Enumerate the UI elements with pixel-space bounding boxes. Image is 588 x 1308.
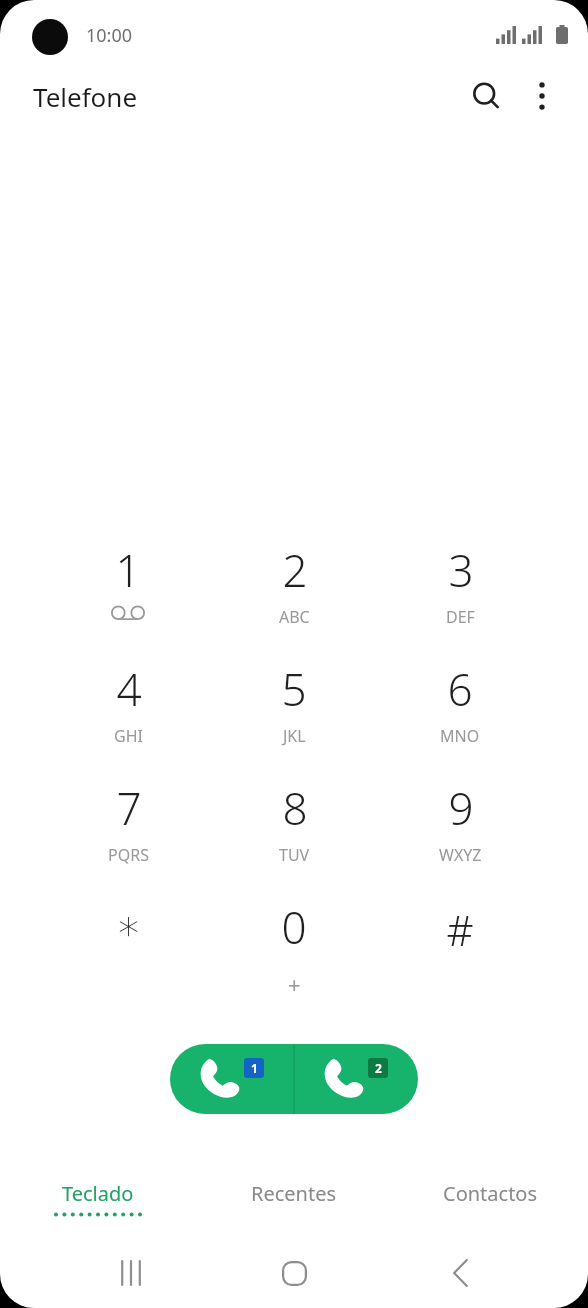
staticText: 3 <box>448 540 474 600</box>
staticText: TUV <box>279 844 310 866</box>
staticText: ∗ <box>115 901 142 950</box>
button[interactable]: 7 <box>56 766 200 885</box>
button[interactable]: 6 <box>388 647 532 766</box>
staticText: JKL <box>283 725 306 747</box>
button[interactable]: Search <box>458 68 514 124</box>
button[interactable]: Back <box>432 1245 488 1301</box>
staticText: # <box>446 901 474 958</box>
staticText: 7 <box>116 778 142 838</box>
staticText: MNO <box>440 725 480 747</box>
staticText: 2 <box>282 540 308 600</box>
staticText: Recentes <box>251 1180 337 1207</box>
button[interactable]: 1 <box>56 528 200 647</box>
staticText: 5 <box>281 659 307 719</box>
staticText: ABC <box>279 606 310 628</box>
staticText: Teclado <box>62 1180 134 1207</box>
button[interactable]: 0 <box>222 885 366 1004</box>
staticText: 4 <box>116 659 142 719</box>
button[interactable]: Contactos <box>392 1160 588 1232</box>
staticText: GHI <box>114 725 143 747</box>
button[interactable]: Recentes <box>196 1160 392 1232</box>
button[interactable]: 4 <box>56 647 200 766</box>
staticText: Contactos <box>443 1180 538 1207</box>
staticText: 8 <box>282 778 308 838</box>
staticText: Telefone <box>33 79 138 114</box>
button[interactable]: # <box>388 885 532 1004</box>
button[interactable]: 8 <box>222 766 366 885</box>
staticText: 9 <box>448 778 474 838</box>
staticText: 6 <box>447 659 473 719</box>
button[interactable]: 3 <box>388 528 532 647</box>
button[interactable]: Call with SIM 1 <box>170 1044 294 1114</box>
staticText: 0 <box>281 897 307 957</box>
staticText: 10:00 <box>86 23 133 48</box>
button[interactable]: Call with SIM 2 <box>294 1044 418 1114</box>
staticText: 2 <box>375 1060 382 1076</box>
button[interactable]: Recent apps <box>103 1245 159 1301</box>
staticText: 1 <box>115 540 141 600</box>
button[interactable]: More options <box>516 70 568 122</box>
button[interactable]: 9 <box>388 766 532 885</box>
staticText: + <box>288 969 301 999</box>
button[interactable]: Home <box>266 1245 322 1301</box>
button[interactable]: Teclado <box>0 1160 196 1232</box>
staticText: DEF <box>446 606 475 628</box>
button[interactable]: ∗ <box>56 885 200 1004</box>
staticText: 1 <box>251 1060 258 1076</box>
staticText: WXYZ <box>439 844 482 866</box>
button[interactable]: 2 <box>222 528 366 647</box>
button[interactable]: 5 <box>222 647 366 766</box>
staticText: PQRS <box>108 844 149 866</box>
